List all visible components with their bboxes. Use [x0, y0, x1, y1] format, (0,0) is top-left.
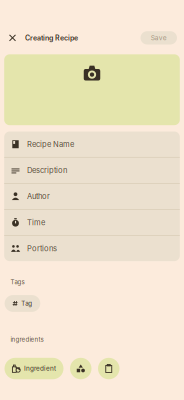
button[interactable]: Portions [4, 236, 180, 261]
button[interactable]: Author [4, 184, 180, 209]
button[interactable]: Paste [98, 358, 119, 379]
button[interactable]: Shapes [70, 358, 91, 379]
button[interactable]: Recipe Name [4, 131, 180, 157]
staticText: Time [27, 218, 45, 227]
button[interactable]: Description [4, 158, 180, 183]
staticText: Tags [10, 278, 24, 286]
staticText: Tag [21, 300, 32, 307]
staticText: Portions [27, 244, 57, 253]
button[interactable]: Tag [5, 295, 40, 312]
staticText: Author [27, 192, 50, 201]
button[interactable]: Close [6, 31, 19, 44]
button[interactable]: Save [140, 31, 177, 44]
staticText: ingredients [10, 336, 43, 343]
button[interactable]: Time [4, 210, 180, 235]
staticText: Recipe Name [27, 140, 74, 149]
staticText: Save [151, 34, 167, 42]
staticText: Creating Recipe [25, 34, 78, 42]
button[interactable]: Add photo [4, 54, 180, 125]
staticText: Description [27, 166, 67, 175]
button[interactable]: Ingredient [4, 358, 63, 379]
staticText: Ingredient [24, 365, 56, 372]
